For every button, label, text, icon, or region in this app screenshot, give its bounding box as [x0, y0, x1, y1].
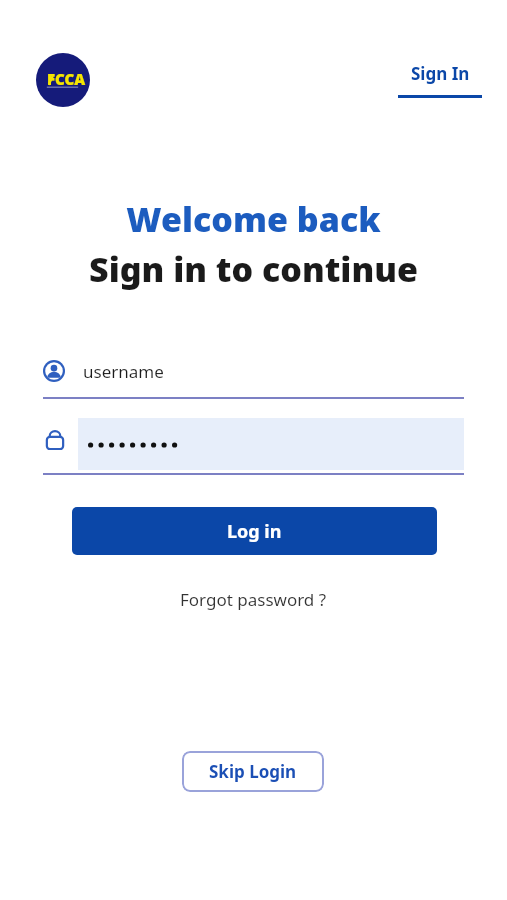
button[interactable]: Forgot password ? — [172, 584, 335, 615]
button[interactable]: FCCA logo — [36, 53, 90, 107]
staticText: Forgot password ? — [180, 588, 327, 611]
staticText: Welcome back — [126, 196, 381, 242]
button[interactable]: Skip Login — [182, 751, 324, 792]
staticText: Sign In — [411, 62, 470, 85]
button[interactable]: username — [43, 346, 464, 399]
button[interactable] — [43, 415, 464, 475]
button[interactable]: Log in — [72, 507, 437, 555]
staticText: Log in — [227, 519, 282, 544]
button[interactable]: Sign In — [396, 62, 484, 98]
staticText: Skip Login — [209, 760, 297, 783]
staticText: FCCA — [47, 69, 86, 89]
staticText: username — [83, 360, 164, 383]
staticText: Sign in to continue — [89, 246, 418, 292]
